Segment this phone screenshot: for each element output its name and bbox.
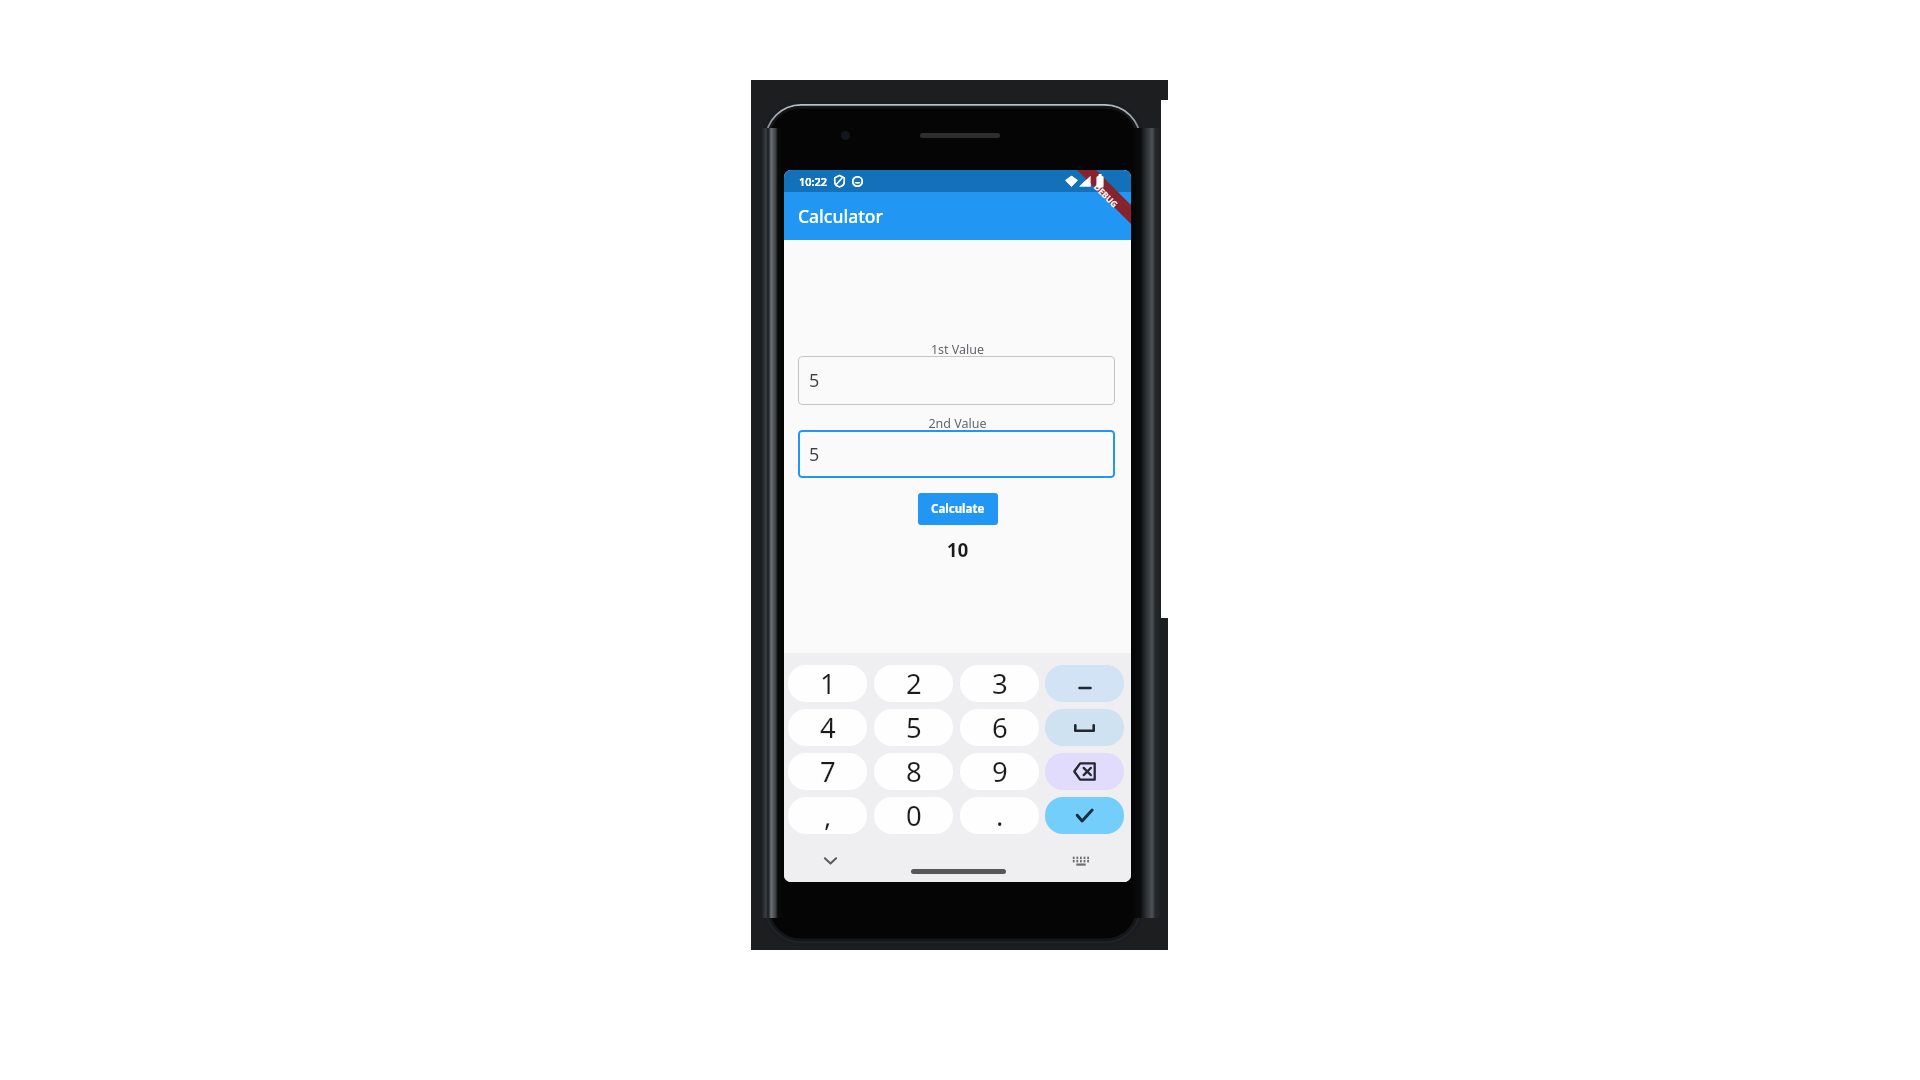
button[interactable]: , (788, 797, 867, 834)
staticText: 1st Value (784, 341, 1131, 358)
button[interactable]: Enter (1045, 797, 1124, 834)
staticText: 5 (809, 442, 820, 467)
button[interactable]: Space (1045, 709, 1124, 746)
button[interactable]: 9 (960, 753, 1039, 790)
staticText: 8 (906, 753, 922, 790)
staticText: . (996, 797, 1004, 834)
button[interactable]: 5 (798, 430, 1115, 478)
staticText: Calculate (931, 501, 985, 517)
button[interactable]: Hide keyboard (822, 853, 839, 869)
button[interactable]: 2 (874, 665, 953, 702)
staticText: DEBUG (1091, 181, 1121, 211)
button[interactable]: 6 (960, 709, 1039, 746)
button[interactable]: Minus (1045, 665, 1124, 702)
button[interactable]: . (960, 797, 1039, 834)
staticText: 0 (906, 797, 922, 834)
button[interactable]: Backspace (1045, 753, 1124, 790)
button[interactable]: 7 (788, 753, 867, 790)
button[interactable]: 3 (960, 665, 1039, 702)
button[interactable]: 5 (798, 356, 1115, 405)
button[interactable]: Calculate (918, 493, 998, 525)
staticText: 3 (992, 665, 1008, 702)
staticText: 5 (906, 709, 922, 746)
button[interactable]: 0 (874, 797, 953, 834)
button[interactable]: 8 (874, 753, 953, 790)
staticText: 4 (820, 709, 836, 746)
button[interactable]: 5 (874, 709, 953, 746)
staticText: 10:22 (799, 174, 828, 189)
staticText: 9 (992, 753, 1008, 790)
staticText: 10 (784, 537, 1131, 563)
staticText: 10:22 (799, 174, 828, 189)
staticText: Calculator (798, 204, 883, 228)
button[interactable]: 1 (788, 665, 867, 702)
button[interactable]: 4 (788, 709, 867, 746)
staticText: 5 (809, 368, 820, 393)
staticText: 7 (820, 753, 836, 790)
staticText: 6 (992, 709, 1008, 746)
button[interactable]: Switch keyboard (1072, 856, 1090, 867)
staticText: 1 (820, 665, 836, 702)
staticText: 2 (906, 665, 922, 702)
staticText: , (824, 797, 832, 834)
staticText: 2nd Value (784, 415, 1131, 432)
